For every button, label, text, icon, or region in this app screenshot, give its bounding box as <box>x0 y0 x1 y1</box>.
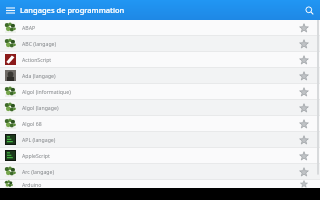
staticText: Algol 68 <box>22 120 294 127</box>
button[interactable]: Add Arduino to favourites <box>294 180 314 188</box>
staticText: APL (langage) <box>22 136 294 143</box>
button[interactable]: Add Algol (informatique) to favourites <box>294 85 314 99</box>
staticText: Langages de programmation <box>20 5 298 15</box>
button[interactable]: Add Arc (langage) to favourites <box>294 165 314 179</box>
staticText: Algol (langage) <box>22 104 294 111</box>
staticText: ABAP <box>22 24 294 31</box>
button[interactable]: Arc (langage) <box>0 164 320 179</box>
staticText: AppleScript <box>22 152 294 159</box>
button[interactable]: Algol (langage) <box>0 100 320 115</box>
button[interactable]: Add ABAP to favourites <box>294 21 314 35</box>
button[interactable]: Add APL (langage) to favourites <box>294 133 314 147</box>
button[interactable]: Add ActionScript to favourites <box>294 53 314 67</box>
button[interactable]: Add Ada (langage) to favourites <box>294 69 314 83</box>
button[interactable]: Open navigation drawer <box>0 0 20 20</box>
staticText: Arc (langage) <box>22 168 294 175</box>
staticText: ActionScript <box>22 56 294 63</box>
staticText: Algol (informatique) <box>22 88 294 95</box>
button[interactable]: Algol (informatique) <box>0 84 320 99</box>
button[interactable]: ABAP <box>0 20 320 35</box>
button[interactable]: AppleScript <box>0 148 320 163</box>
staticText: Arduino <box>22 181 294 188</box>
staticText: ABC (langage) <box>22 40 294 47</box>
button[interactable]: Add ABC (langage) to favourites <box>294 37 314 51</box>
button[interactable]: Algol 68 <box>0 116 320 131</box>
button[interactable]: ABC (langage) <box>0 36 320 51</box>
button[interactable]: Arduino <box>0 180 320 188</box>
staticText: Ada (langage) <box>22 72 294 79</box>
button[interactable]: ActionScript <box>0 52 320 67</box>
button[interactable]: Add AppleScript to favourites <box>294 149 314 163</box>
button[interactable]: Search <box>298 0 320 20</box>
button[interactable]: Add Algol 68 to favourites <box>294 117 314 131</box>
button[interactable]: Add Algol (langage) to favourites <box>294 101 314 115</box>
button[interactable]: Ada (langage) <box>0 68 320 83</box>
button[interactable]: APL (langage) <box>0 132 320 147</box>
